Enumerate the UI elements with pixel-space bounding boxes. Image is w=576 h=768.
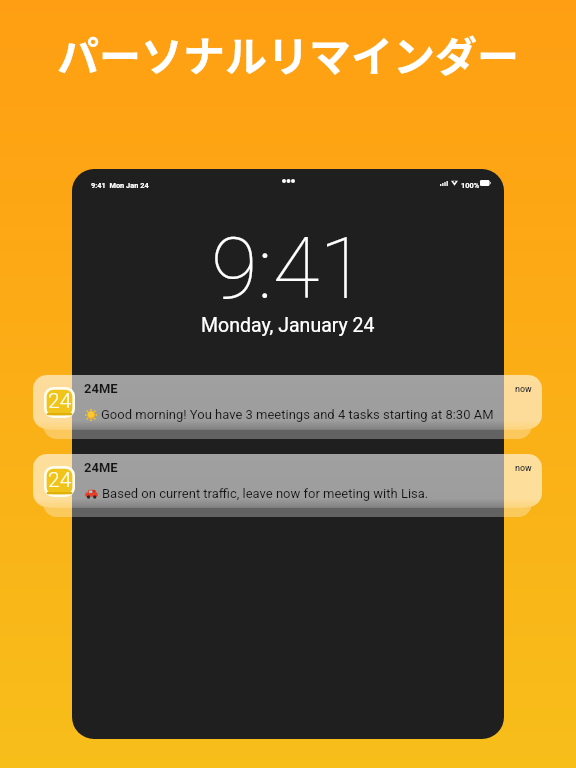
staticText: 24ME xyxy=(84,460,118,475)
staticText: now xyxy=(515,384,532,395)
staticText: 24ME xyxy=(84,381,118,396)
staticText: 9:41 xyxy=(211,219,366,319)
staticText: Monday, January 24 xyxy=(201,314,375,337)
staticText: パーソナルリマインダー xyxy=(0,23,576,84)
staticText: 24 xyxy=(48,389,72,414)
button[interactable]: 24 xyxy=(33,454,542,507)
staticText: 24 xyxy=(48,468,72,493)
staticText: Good morning! You have 3 meetings and 4 … xyxy=(101,407,494,422)
button[interactable]: 24 xyxy=(33,375,542,429)
staticText: 100% xyxy=(461,181,480,190)
staticText: Based on current traffic, leave now for … xyxy=(102,486,429,501)
staticText: now xyxy=(515,463,532,474)
staticText: 9:41 Mon Jan 24 xyxy=(91,181,149,190)
